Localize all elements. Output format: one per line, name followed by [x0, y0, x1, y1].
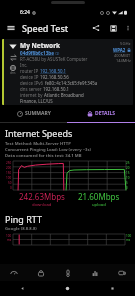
button[interactable]: Security: [27, 264, 54, 281]
staticText: 192.168.50.56: [40, 74, 69, 80]
staticText: 200: [6, 166, 12, 170]
staticText: Speed Test: [22, 22, 69, 34]
staticText: 242.63Mbps: [19, 191, 65, 202]
staticText: 100: [126, 234, 132, 238]
button[interactable]: Home: [45, 281, 90, 296]
staticText: 04d9f8b6c13be: [20, 50, 54, 56]
staticText: dns server: [20, 86, 43, 92]
staticText: 100: [6, 234, 12, 238]
staticText: fe80::4c14:3c65:fe9f:345a: [45, 80, 98, 86]
staticText: 20: [126, 166, 130, 170]
staticText: ms: [7, 238, 12, 242]
staticText: Google (8.8.8.8): [5, 226, 37, 232]
staticText: 5GHz: [120, 41, 131, 47]
staticText: 21.60Mbps: [78, 191, 120, 202]
staticText: device IPv6: [20, 80, 45, 86]
staticText: Inc.: [20, 62, 28, 68]
staticText: download: [32, 202, 52, 208]
button[interactable]: Save result: [105, 17, 121, 39]
staticText: 10: [126, 176, 130, 180]
staticText: Atlantic Broadband: [44, 92, 84, 98]
button[interactable]: More options: [121, 17, 135, 39]
staticText: Internet Speeds: [5, 127, 73, 139]
staticText: 100: [6, 176, 12, 180]
staticText: router IP: [20, 68, 40, 74]
button[interactable]: Back: [0, 281, 45, 296]
button[interactable]: Speed test: [0, 264, 27, 281]
staticText: RT-AC58U by ASUSTeK Computer: [20, 56, 88, 62]
staticText: Ping RTT: [5, 213, 42, 225]
button[interactable]: DETAILS: [67, 105, 135, 122]
staticText: Data consumed for this test: 34.1 MB: [5, 153, 82, 159]
staticText: My Network: [20, 41, 61, 50]
button[interactable]: Share: [87, 17, 105, 39]
staticText: 144MHz: [116, 58, 131, 63]
staticText: 50: [8, 181, 12, 185]
staticText: WPA2: [113, 47, 126, 53]
staticText: 400MBIT: [114, 53, 131, 58]
button[interactable]: SUMMARY: [0, 105, 67, 122]
staticText: upload: [92, 202, 106, 208]
button[interactable]: Devices: [108, 264, 135, 281]
staticText: dns: [10, 71, 16, 75]
button[interactable]: Statistics: [81, 264, 108, 281]
staticText: SUMMARY: [25, 110, 51, 117]
staticText: ⓘ: [55, 51, 59, 56]
staticText: 6:24: [20, 9, 30, 16]
button[interactable]: Tools: [54, 264, 81, 281]
button[interactable]: Open navigation menu: [0, 17, 22, 39]
staticText: 15: [126, 171, 130, 175]
staticText: device IP: [20, 74, 40, 80]
staticText: 5: [126, 181, 128, 185]
staticText: Concurrent Pinging Load: Low (every ~3s): [5, 147, 91, 153]
staticText: ms: [126, 238, 131, 242]
staticText: 0: [126, 186, 128, 190]
button[interactable]: dns: [2, 39, 133, 105]
staticText: 150: [6, 171, 12, 175]
staticText: 0: [10, 186, 12, 190]
staticText: DETAILS: [95, 110, 115, 117]
staticText: 25: [126, 161, 130, 165]
staticText: 250: [6, 161, 12, 165]
button[interactable]: Recent apps: [90, 281, 135, 296]
staticText: Finance, LLC/US: [20, 98, 53, 104]
staticText: Test Method: Multi-Server HTTP: [5, 141, 71, 147]
staticText: internet by: [20, 92, 44, 98]
staticText: 192.168.50.1: [40, 68, 67, 74]
staticText: 192.168.50.1: [43, 86, 70, 92]
